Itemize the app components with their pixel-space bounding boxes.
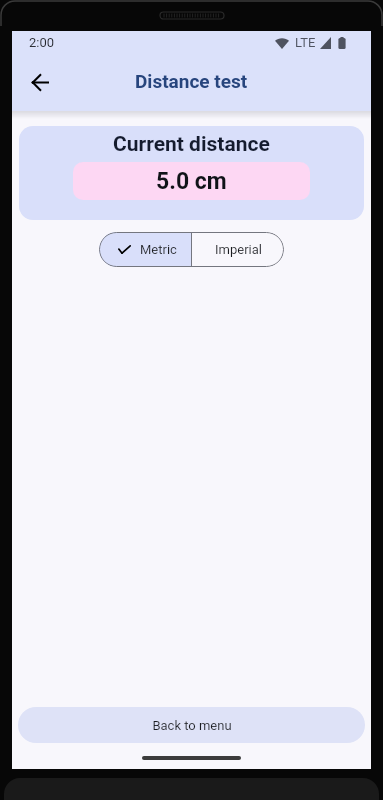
staticText: 2:00: [29, 35, 55, 50]
button[interactable]: Back to menu: [18, 707, 365, 743]
staticText: LTE: [295, 35, 316, 50]
button[interactable]: Back: [18, 60, 62, 104]
staticText: Back to menu: [152, 718, 232, 733]
staticText: Imperial: [215, 242, 262, 257]
button[interactable]: Metric: [99, 232, 191, 267]
staticText: Distance test: [135, 70, 248, 92]
staticText: Current distance: [113, 132, 270, 157]
staticText: Metric: [140, 242, 177, 257]
staticText: 5.0 cm: [156, 168, 227, 195]
button[interactable]: Imperial: [192, 232, 284, 267]
